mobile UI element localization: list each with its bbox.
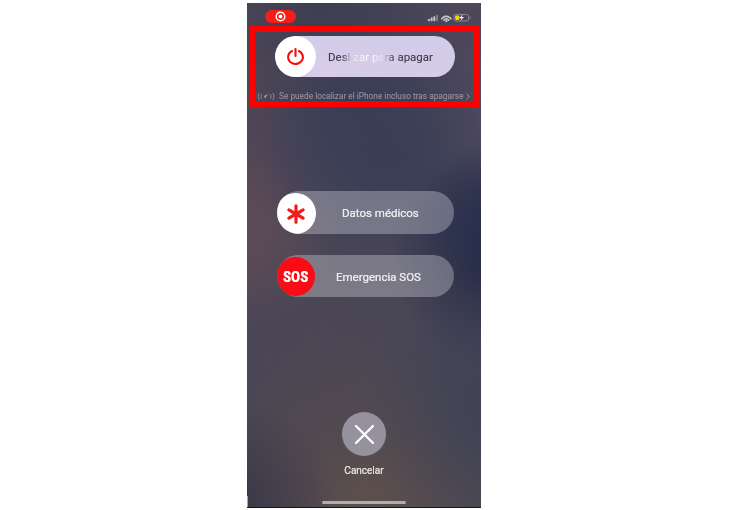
button[interactable]: Cancelar — [320, 412, 408, 477]
staticText: Emergencia SOS — [336, 270, 421, 283]
button[interactable]: Screen recording — [265, 10, 296, 23]
staticText: SOS — [283, 268, 309, 286]
staticText: Datos médicos — [342, 206, 419, 219]
button[interactable]: Datos médicos — [277, 191, 454, 234]
staticText: Deslizar para apagar — [328, 50, 433, 63]
staticText: Se puede localizar el iPhone incluso tra… — [279, 91, 464, 101]
button[interactable]: Emergencia SOS — [277, 255, 454, 297]
button[interactable]: Se puede localizar el iPhone incluso tra… — [259, 90, 470, 102]
staticText: Cancelar — [344, 465, 384, 477]
button[interactable]: Deslizar para apagar — [275, 36, 455, 77]
